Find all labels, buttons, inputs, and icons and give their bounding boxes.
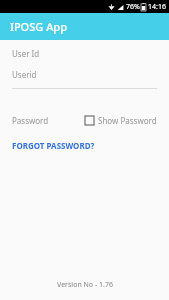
- button[interactable]: Userid: [12, 69, 157, 89]
- button[interactable]: FORGOT PASSWORD?: [12, 140, 95, 151]
- staticText: IPOSG App: [10, 19, 67, 34]
- staticText: Version No - 1.76: [57, 280, 113, 290]
- staticText: 76%: [126, 2, 140, 12]
- staticText: Password: [12, 115, 49, 126]
- staticText: Show Password: [98, 115, 157, 126]
- button[interactable]: Show Password: [85, 115, 157, 126]
- staticText: Userid: [12, 69, 37, 80]
- staticText: User Id: [12, 48, 40, 59]
- staticText: FORGOT PASSWORD?: [12, 140, 95, 151]
- button[interactable]: Password: [12, 115, 85, 126]
- staticText: 14:16: [148, 2, 166, 12]
